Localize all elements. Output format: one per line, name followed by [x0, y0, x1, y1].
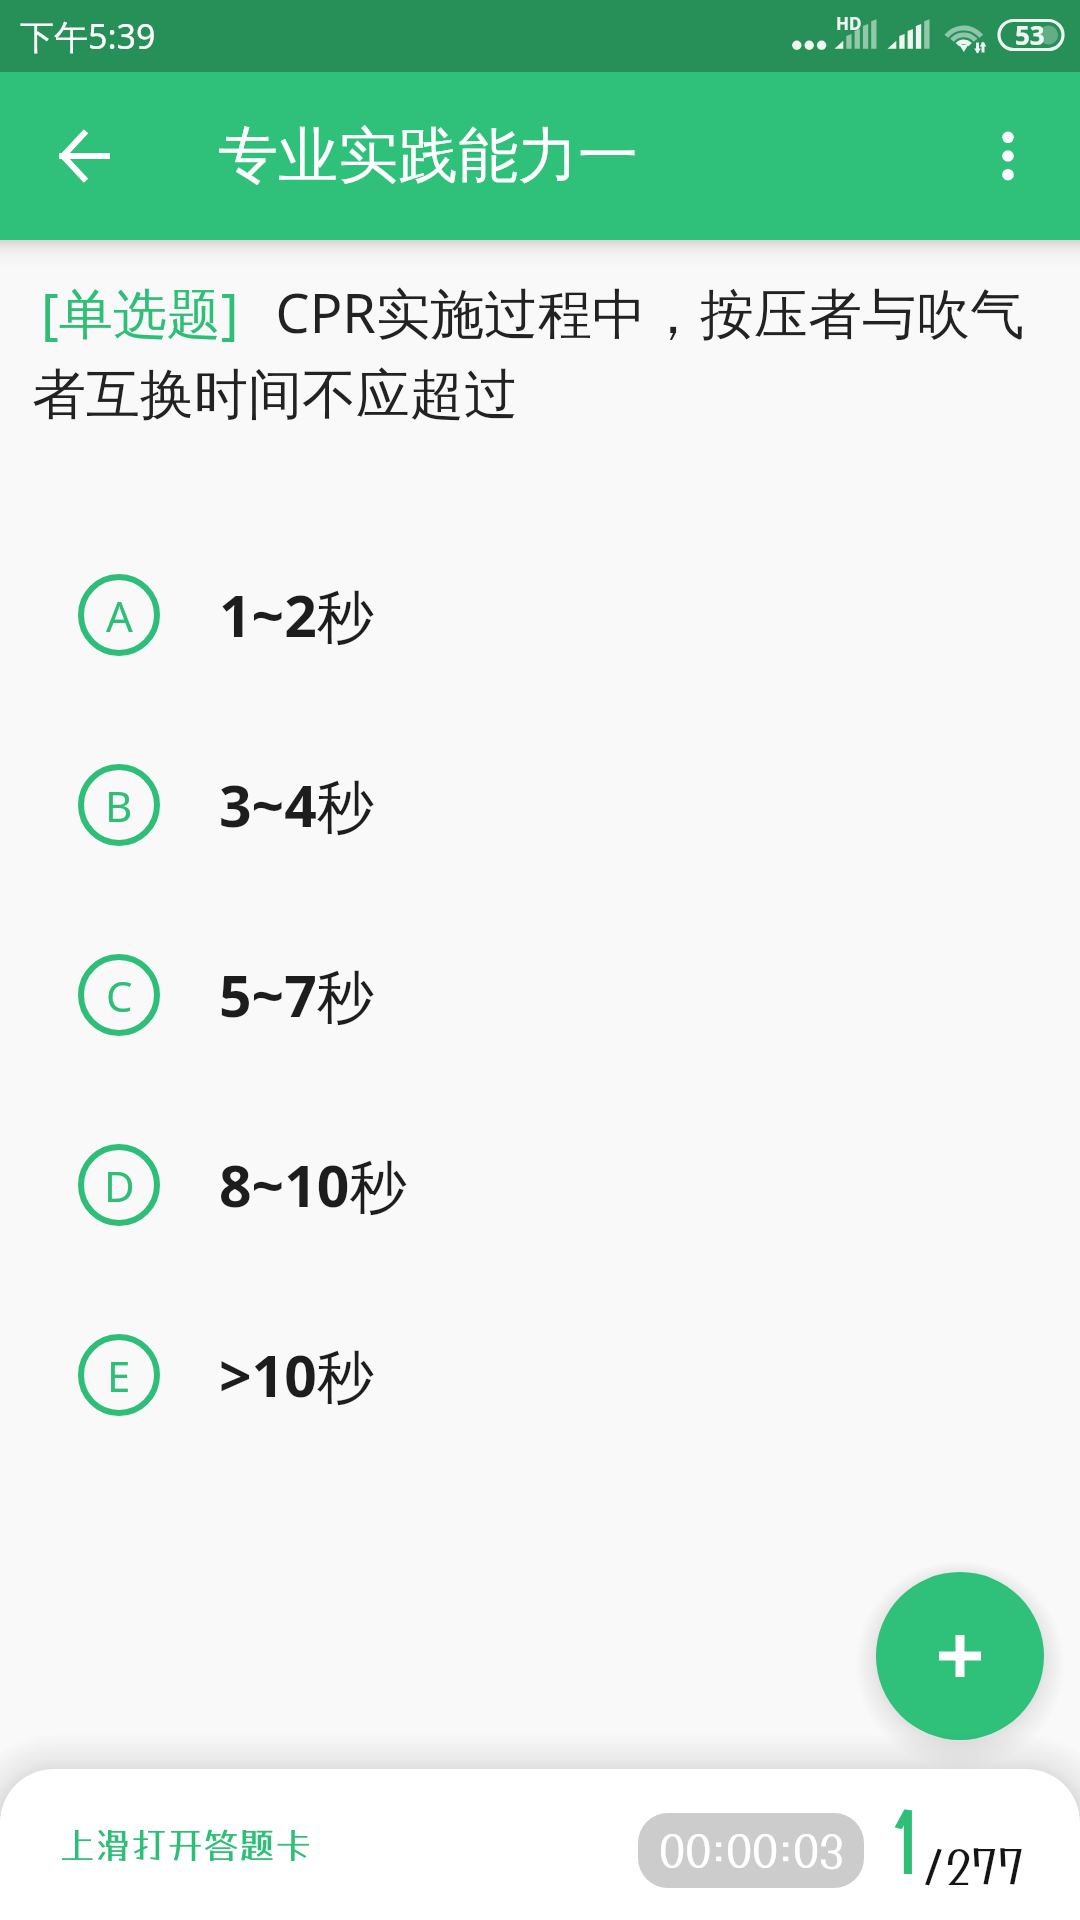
staticText: HD [836, 12, 862, 35]
button[interactable]: B [0, 710, 1080, 900]
staticText: 00:00:03 [659, 1825, 844, 1877]
staticText: 8~10秒 [219, 1146, 407, 1224]
button[interactable]: A [0, 520, 1080, 710]
staticText: 专业实践能力一 [218, 118, 638, 194]
staticText: 3~4秒 [219, 766, 374, 844]
staticText: D [104, 1157, 135, 1214]
staticText: 53 [1015, 17, 1045, 52]
staticText: 下午5:39 [20, 13, 156, 59]
staticText: B [105, 777, 133, 834]
staticText: [单选题] CPR实施过程中，按压者与吹气者互换时间不应超过 [32, 275, 1048, 429]
staticText: >10秒 [219, 1336, 374, 1414]
button[interactable]: More options [960, 108, 1056, 204]
staticText: A [106, 587, 133, 644]
staticText: 5~7秒 [219, 956, 374, 1034]
button[interactable]: E [0, 1280, 1080, 1470]
button[interactable]: Back [36, 108, 132, 204]
button[interactable]: Add question [876, 1572, 1044, 1740]
staticText: C [106, 967, 133, 1024]
button[interactable]: 上滑打开答题卡 [40, 1790, 330, 1900]
staticText: 1~2秒 [219, 576, 374, 654]
staticText: /277 [921, 1839, 1025, 1894]
staticText: E [107, 1347, 131, 1404]
button[interactable]: D [0, 1090, 1080, 1280]
staticText: 上滑打开答题卡 [59, 1824, 312, 1866]
button[interactable]: C [0, 900, 1080, 1090]
staticText: 1 [890, 1792, 924, 1891]
